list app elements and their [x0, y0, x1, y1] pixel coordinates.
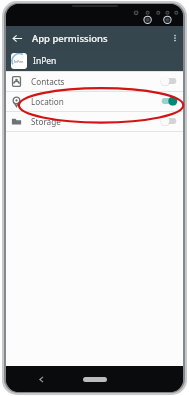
staticText: InPen — [33, 55, 57, 67]
staticText: Location — [31, 96, 160, 107]
button[interactable]: InPen — [6, 50, 183, 71]
button[interactable]: Off — [160, 75, 178, 87]
button[interactable]: Back — [6, 26, 28, 50]
button[interactable]: Home — [83, 377, 107, 382]
button[interactable]: Contacts — [6, 71, 183, 91]
button[interactable]: More options — [167, 26, 183, 50]
staticText: Contacts — [31, 76, 160, 87]
button[interactable]: On — [160, 95, 178, 107]
staticText: InPen — [14, 59, 24, 64]
staticText: App permissions — [32, 32, 167, 45]
button[interactable]: Off — [160, 115, 178, 127]
staticText: Storage — [31, 116, 160, 127]
button[interactable]: Storage — [6, 111, 183, 131]
button[interactable]: Location — [6, 91, 183, 111]
button[interactable]: Back — [34, 372, 48, 386]
